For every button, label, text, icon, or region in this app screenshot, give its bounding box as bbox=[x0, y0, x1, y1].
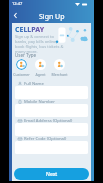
staticText: Mobile Number bbox=[24, 99, 55, 105]
button[interactable]: Full Name bbox=[12, 80, 91, 98]
staticText: Customer bbox=[13, 72, 30, 77]
button[interactable]: Merchant bbox=[50, 59, 68, 77]
button[interactable]: Agent bbox=[31, 59, 49, 77]
staticText: Sign Up bbox=[39, 12, 65, 21]
button[interactable]: Mobile Number bbox=[12, 98, 91, 116]
staticText: Email Address (Optional) bbox=[24, 118, 73, 124]
staticText: 12:47 bbox=[12, 1, 23, 6]
staticText: Agent bbox=[35, 72, 46, 77]
staticText: Merchant bbox=[51, 72, 68, 77]
staticText: User Type bbox=[15, 52, 37, 58]
button[interactable]: Back bbox=[10, 10, 21, 21]
button[interactable]: Email Address (Optional) bbox=[12, 117, 91, 135]
staticText: Full Name bbox=[24, 81, 44, 87]
button[interactable]: Customer bbox=[12, 59, 30, 77]
staticText: Next bbox=[46, 171, 58, 178]
button[interactable]: Refer Code (Optional) bbox=[12, 135, 91, 153]
staticText: Refer Code (Optional) bbox=[24, 136, 67, 142]
button[interactable]: Next bbox=[14, 168, 89, 180]
staticText: CELLPAY bbox=[15, 25, 45, 35]
staticText: Sign up & connect to banks, pay bills on… bbox=[15, 34, 64, 54]
